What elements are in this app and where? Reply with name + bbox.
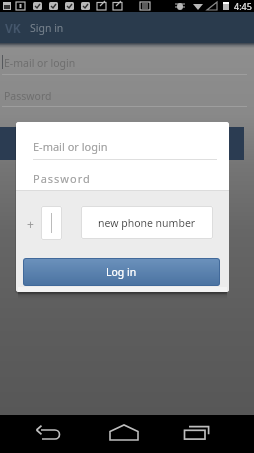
staticText: new phone number: [98, 216, 196, 230]
button[interactable]: [105, 420, 149, 448]
button[interactable]: Password: [33, 171, 91, 186]
button[interactable]: [41, 206, 62, 240]
staticText: VK: [5, 20, 21, 36]
button[interactable]: E-mail or login: [33, 139, 108, 154]
button[interactable]: new phone number: [81, 206, 213, 239]
staticText: Sign in: [30, 21, 64, 35]
staticText: Log in: [106, 265, 137, 279]
staticText: Password: [4, 89, 52, 103]
button[interactable]: [30, 420, 70, 448]
staticText: 4:45: [234, 0, 252, 12]
staticText: E-mail or login: [4, 56, 76, 70]
button[interactable]: Log in: [23, 258, 220, 286]
button[interactable]: VK: [0, 12, 254, 43]
staticText: +: [27, 216, 34, 232]
button[interactable]: [178, 420, 218, 448]
